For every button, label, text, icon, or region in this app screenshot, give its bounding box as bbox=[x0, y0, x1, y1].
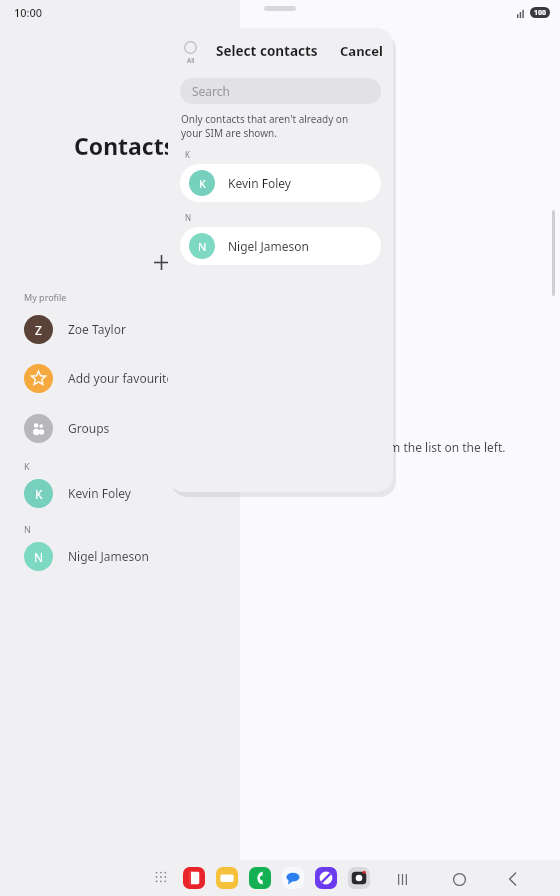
button[interactable]: Add your favourite contacts bbox=[24, 362, 240, 394]
button[interactable]: N bbox=[24, 541, 240, 571]
staticText: Select a contact from the list on the le… bbox=[282, 439, 506, 455]
staticText: Nigel Jameson bbox=[228, 238, 310, 254]
staticText: Zoe Taylor bbox=[68, 321, 126, 337]
button[interactable]: Recents bbox=[393, 870, 411, 888]
staticText: Add your favourite contacts bbox=[68, 370, 224, 386]
staticText: N bbox=[198, 239, 207, 254]
button[interactable]: K bbox=[180, 164, 381, 202]
staticText: All bbox=[187, 56, 195, 65]
button[interactable]: Files bbox=[216, 867, 238, 889]
staticText: Groups bbox=[68, 420, 110, 436]
staticText: My profile bbox=[24, 291, 67, 303]
staticText: K bbox=[24, 460, 30, 472]
staticText: N bbox=[34, 549, 44, 565]
button[interactable]: Search bbox=[180, 78, 381, 104]
staticText: Cancel bbox=[340, 42, 383, 60]
staticText: K bbox=[185, 149, 190, 160]
staticText: N bbox=[24, 523, 31, 535]
button[interactable]: Messages bbox=[282, 867, 304, 889]
staticText: Select contacts bbox=[216, 42, 318, 60]
button[interactable]: Apps bbox=[155, 871, 169, 885]
staticText: Kevin Foley bbox=[228, 175, 291, 191]
staticText: Search bbox=[192, 83, 230, 99]
button[interactable]: K bbox=[24, 478, 240, 508]
button[interactable]: N bbox=[180, 227, 381, 265]
button[interactable]: Cancel bbox=[340, 42, 383, 60]
button[interactable]: Home bbox=[450, 870, 468, 888]
staticText: K bbox=[199, 176, 206, 191]
staticText: K bbox=[35, 486, 43, 502]
button[interactable]: Internet bbox=[315, 867, 337, 889]
staticText: Kevin Foley bbox=[68, 485, 131, 501]
staticText: 100 bbox=[534, 8, 547, 18]
staticText: Contacts bbox=[74, 130, 176, 161]
staticText: Z bbox=[35, 322, 42, 338]
button[interactable]: Select all bbox=[184, 41, 197, 65]
staticText: Only contacts that aren't already on you… bbox=[181, 112, 349, 140]
button[interactable]: Notes bbox=[183, 867, 205, 889]
button[interactable]: Add contact bbox=[147, 248, 175, 276]
staticText: Nigel Jameson bbox=[68, 548, 150, 564]
staticText: 10:00 bbox=[14, 5, 43, 20]
button[interactable]: Groups bbox=[24, 412, 240, 444]
button[interactable]: Phone bbox=[249, 867, 271, 889]
button[interactable]: Back bbox=[504, 870, 522, 888]
button[interactable]: Z bbox=[24, 314, 240, 344]
staticText: N bbox=[185, 212, 192, 223]
button[interactable]: Camera bbox=[348, 867, 370, 889]
